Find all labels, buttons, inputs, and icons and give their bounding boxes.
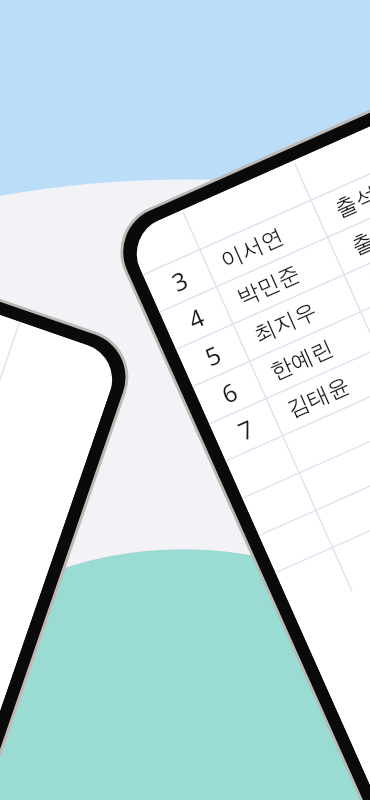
- button[interactable]: [0, 0, 370, 800]
